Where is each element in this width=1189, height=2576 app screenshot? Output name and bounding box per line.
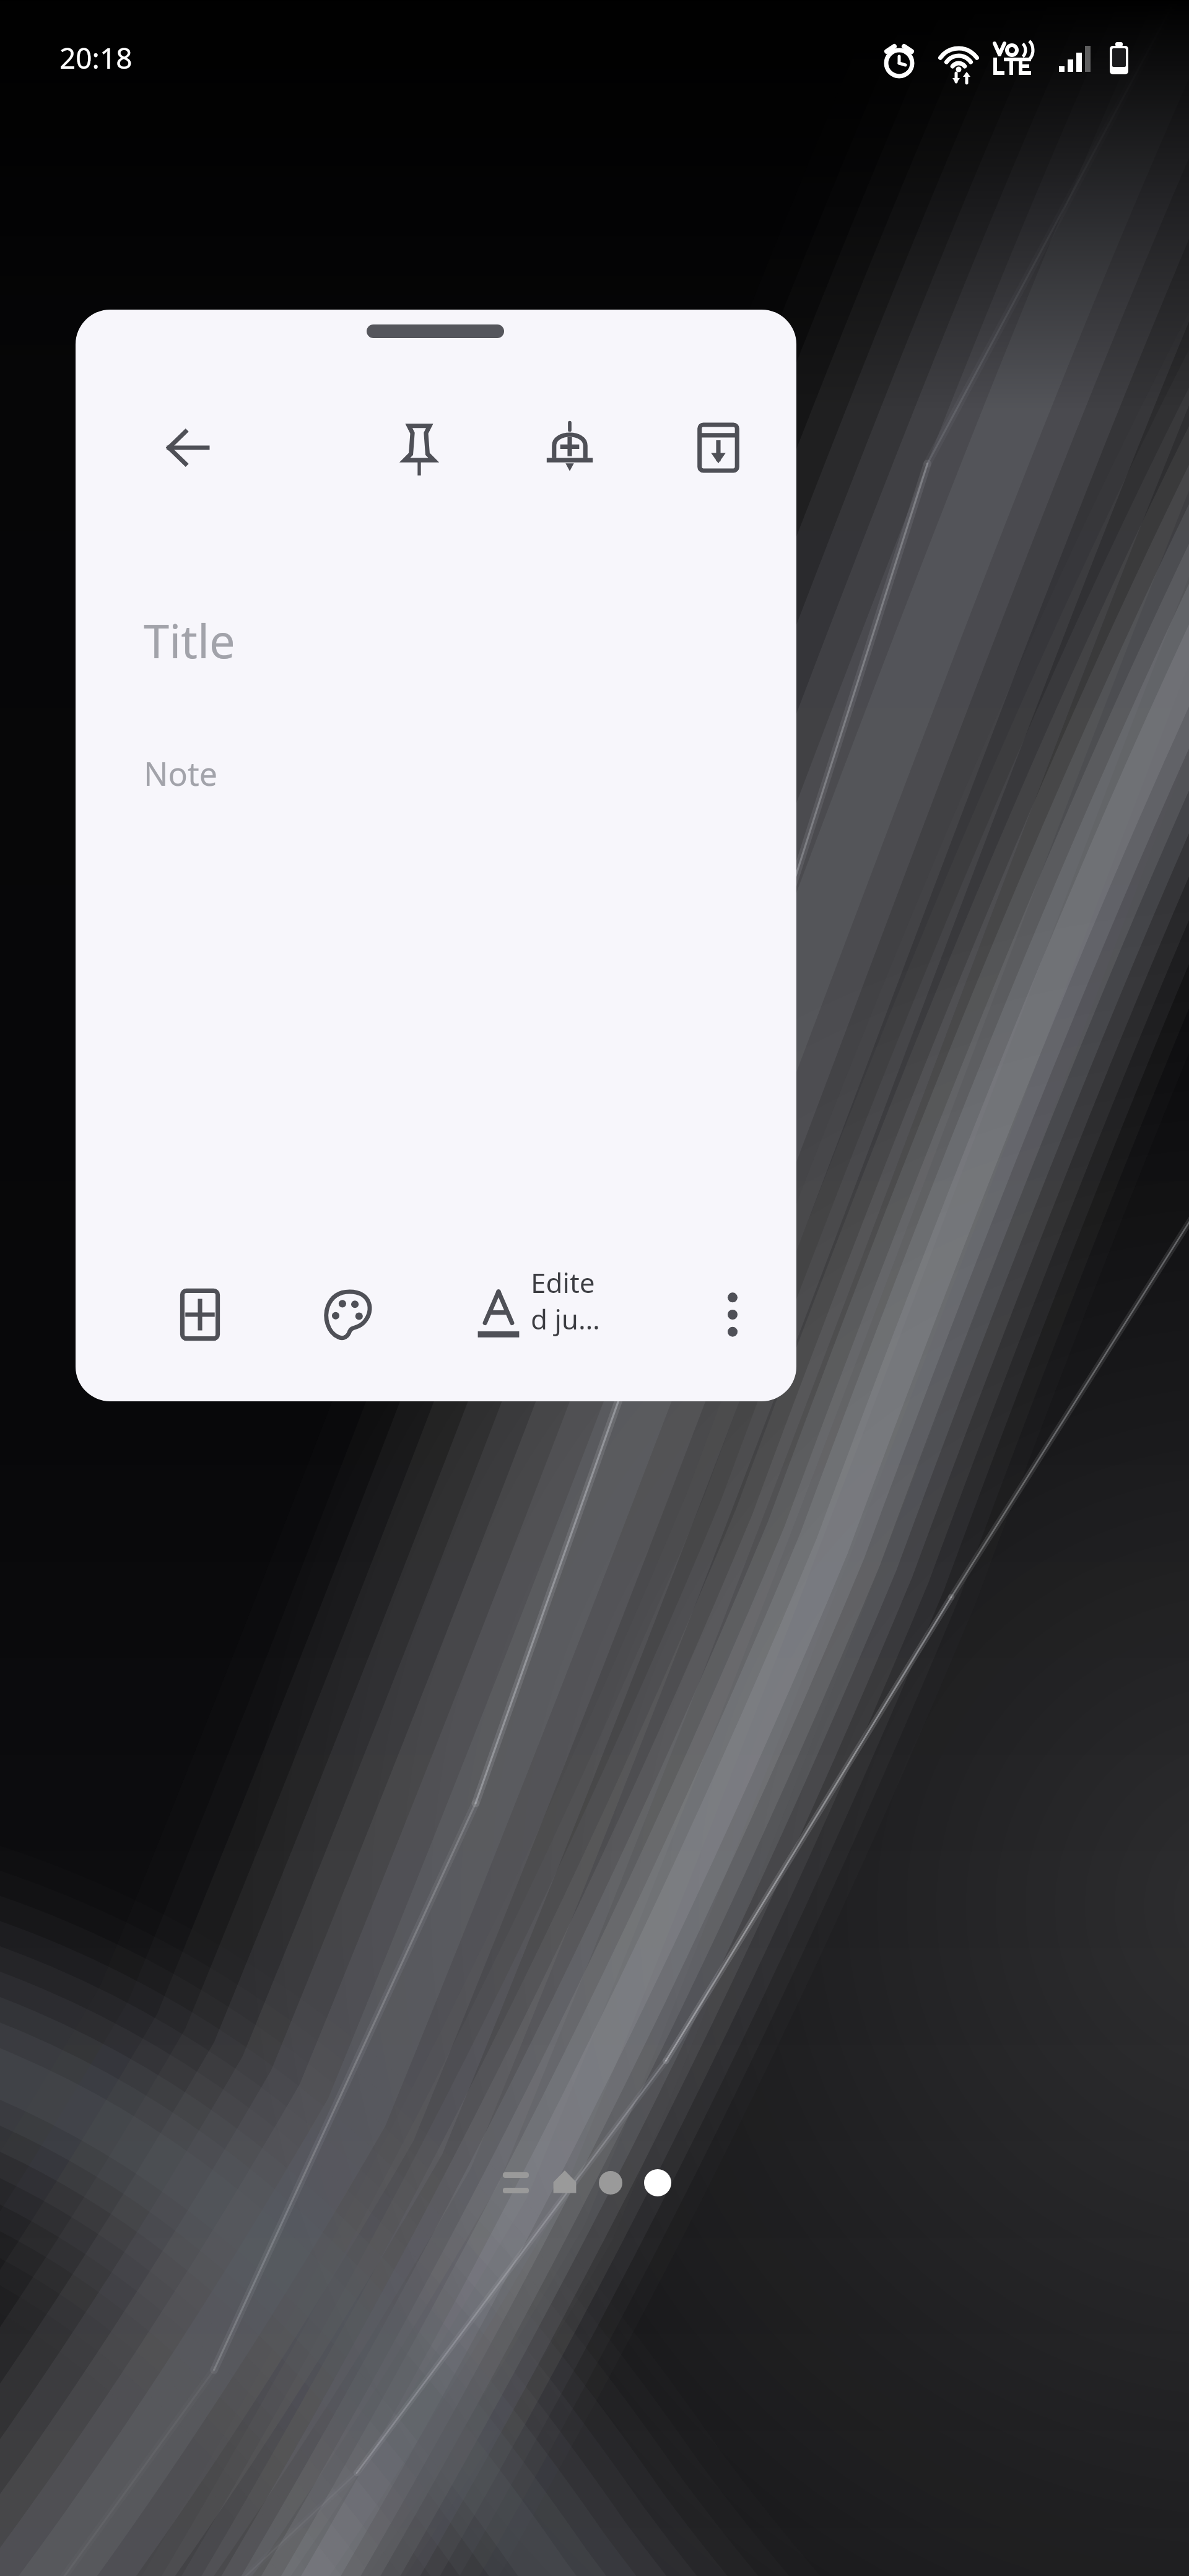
button[interactable]: More options	[695, 1277, 770, 1352]
button[interactable]: Pin note	[382, 411, 456, 485]
staticText: Note	[144, 751, 218, 795]
button[interactable]: Edited ju…	[531, 1257, 611, 1344]
button[interactable]: Add	[163, 1277, 237, 1352]
button[interactable]: Formatting options	[461, 1277, 536, 1352]
staticText: Title	[144, 609, 235, 672]
button[interactable]: Add reminder	[533, 411, 607, 485]
staticText: 20:18	[59, 38, 133, 77]
button[interactable]: Title	[144, 603, 738, 677]
button[interactable]: Change colour	[311, 1277, 386, 1352]
button[interactable]: Archive	[681, 411, 756, 485]
button[interactable]: Navigate up	[150, 411, 225, 485]
button[interactable]: Note	[144, 743, 738, 803]
staticText: Edited ju…	[531, 1264, 611, 1337]
